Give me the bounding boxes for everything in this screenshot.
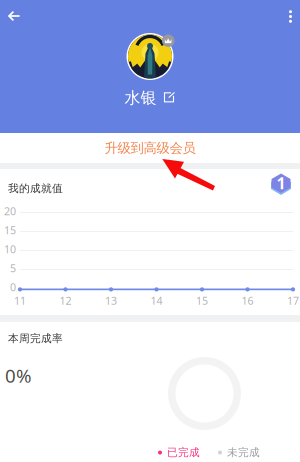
staticText: 15 (196, 293, 208, 308)
button[interactable]: Avatar (122, 33, 178, 80)
staticText: 本周完成率 (8, 332, 63, 345)
staticText: 16 (241, 293, 253, 308)
staticText: 12 (59, 293, 71, 308)
staticText: 15 (4, 223, 16, 237)
staticText: 20 (4, 204, 16, 218)
staticText: 14 (150, 293, 162, 308)
button[interactable]: 水银 (124, 88, 175, 108)
button[interactable]: More options (289, 5, 300, 23)
staticText: 5 (10, 261, 16, 275)
staticText: 升级到高级会员 (104, 140, 195, 156)
staticText: 13 (105, 293, 117, 308)
staticText: 1 (276, 172, 285, 194)
staticText: 0% (5, 363, 32, 388)
staticText: 已完成 (167, 446, 200, 459)
staticText: 10 (4, 242, 16, 256)
staticText: 17 (287, 293, 299, 308)
staticText: 0 (10, 280, 16, 294)
staticText: 我的成就值 (8, 182, 63, 195)
button[interactable]: 升级到高级会员 (0, 133, 300, 163)
staticText: 11 (14, 293, 26, 308)
button[interactable]: Back (0, 6, 21, 22)
staticText: 水银 (124, 88, 156, 108)
staticText: 未完成 (227, 446, 260, 459)
